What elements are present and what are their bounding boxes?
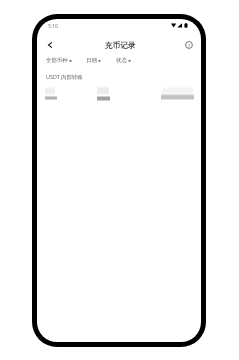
staticText: 全部币种 <box>46 57 68 64</box>
button[interactable]: Help <box>182 38 196 52</box>
button[interactable]: Back <box>43 38 57 52</box>
staticText: 充币记录 <box>105 41 136 51</box>
staticText: 5:10 <box>48 23 58 30</box>
button[interactable]: 全部币种 <box>46 57 72 64</box>
staticText: 状态 <box>116 57 127 64</box>
staticText: USDT 内部转账 <box>46 73 83 80</box>
staticText: 日期 <box>86 57 97 64</box>
button[interactable]: 状态 <box>116 57 131 64</box>
staticText: ? <box>188 42 191 49</box>
button[interactable]: 日期 <box>86 57 101 64</box>
